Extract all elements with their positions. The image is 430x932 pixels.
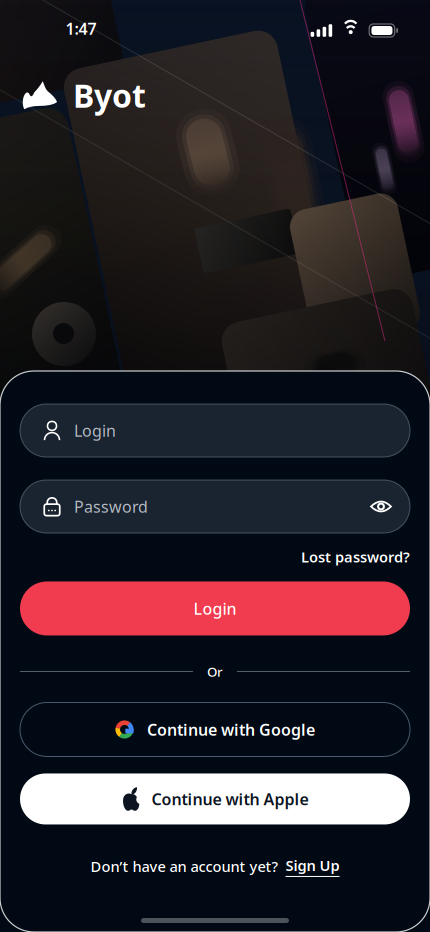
- staticText: Login: [193, 598, 236, 619]
- button[interactable]: Login: [20, 404, 410, 457]
- button[interactable]: Lost password?: [301, 543, 410, 570]
- staticText: Password: [74, 496, 148, 517]
- staticText: Don’t have an account yet?: [90, 856, 278, 876]
- staticText: 1:47: [65, 18, 96, 39]
- staticText: Byot: [73, 74, 146, 116]
- staticText: Continue with Apple: [151, 788, 308, 810]
- staticText: Continue with Google: [147, 719, 315, 740]
- staticText: Lost password?: [301, 547, 410, 566]
- staticText: Sign Up: [285, 855, 339, 875]
- button[interactable]: Sign Up: [285, 855, 339, 877]
- button[interactable]: Continue with Apple: [20, 773, 410, 824]
- staticText: Or: [207, 663, 223, 680]
- staticText: Login: [74, 420, 116, 441]
- button[interactable]: Continue with Google: [20, 702, 410, 756]
- button[interactable]: Password: [20, 480, 410, 533]
- button[interactable]: Login: [20, 581, 410, 635]
